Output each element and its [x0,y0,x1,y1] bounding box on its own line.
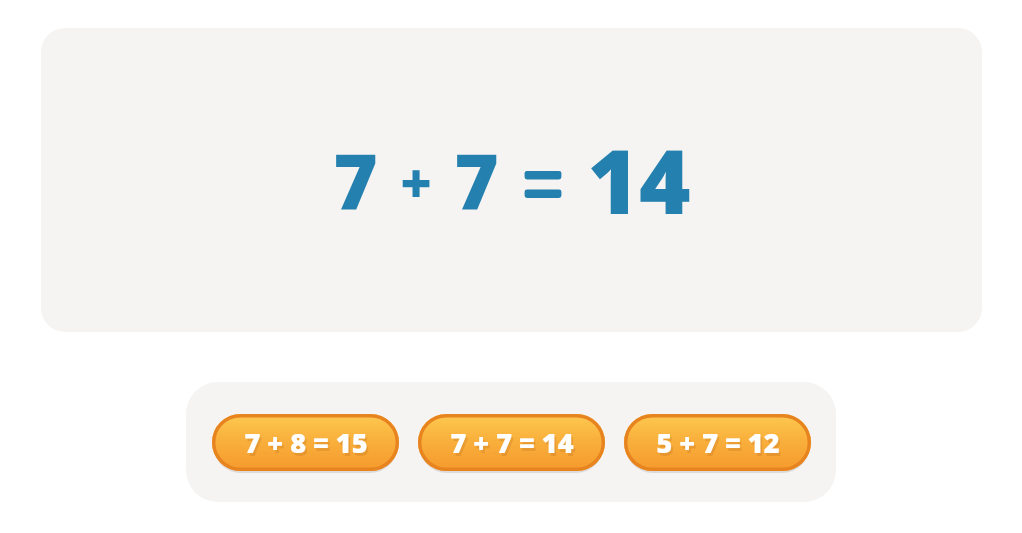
button[interactable]: 7 [41,28,982,332]
staticText: 7 + 7 = 14 [452,427,576,464]
staticText: 7 + 8 = 15 [246,427,370,464]
button[interactable]: 7 + 7 = 14 [418,414,605,471]
button[interactable]: 5 + 7 = 12 [624,414,811,471]
staticText: 7 [333,128,378,232]
staticText: 7 + 8 = 15 [244,424,368,461]
staticText: 7 + 7 = 14 [450,424,574,461]
staticText: + [400,145,432,219]
button[interactable]: 7 + 8 = 15 [212,414,399,471]
staticText: 5 + 7 = 12 [656,424,780,461]
staticText: 7 [454,128,499,232]
staticText: 14 [587,120,691,240]
staticText: 5 + 7 = 12 [658,427,782,464]
